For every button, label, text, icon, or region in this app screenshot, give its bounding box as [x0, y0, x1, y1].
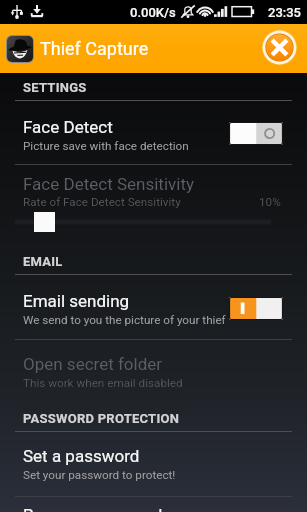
staticText: PASSWORD PROTECTION — [23, 411, 180, 426]
staticText: 23:35 — [268, 5, 301, 20]
staticText: Thief Capture — [40, 38, 149, 59]
button[interactable]: Open secret folder — [0, 340, 307, 404]
button[interactable]: Face Detect Sensitivity — [0, 165, 307, 247]
staticText: Set a password — [23, 446, 140, 466]
staticText: 0.00K/s — [130, 5, 176, 20]
button[interactable]: Email sending — [0, 275, 307, 339]
button[interactable]: Switch off — [229, 122, 283, 145]
staticText: Remove password — [23, 505, 163, 512]
staticText: This work when email disabled — [23, 376, 183, 390]
staticText: EMAIL — [23, 254, 63, 269]
staticText: Face Detect Sensitivity — [23, 174, 194, 194]
staticText: Rate of Face Detect Sensitivity — [23, 195, 181, 209]
staticText: SETTINGS — [23, 80, 87, 95]
staticText: Email sending — [23, 291, 130, 311]
staticText: We send to you the picture of your thief — [23, 313, 226, 327]
staticText: Face Detect — [23, 117, 113, 137]
button[interactable]: Remove password — [0, 497, 307, 512]
button[interactable]: Switch on — [229, 297, 283, 320]
staticText: 10% — [259, 195, 281, 209]
staticText: Set your password to protect! — [23, 468, 176, 482]
button[interactable]: Close — [262, 30, 297, 65]
staticText: Picture save with face detection — [23, 139, 189, 153]
button[interactable]: Face Detect — [0, 101, 307, 164]
button[interactable]: Set a password — [0, 432, 307, 496]
staticText: Open secret folder — [23, 354, 163, 374]
